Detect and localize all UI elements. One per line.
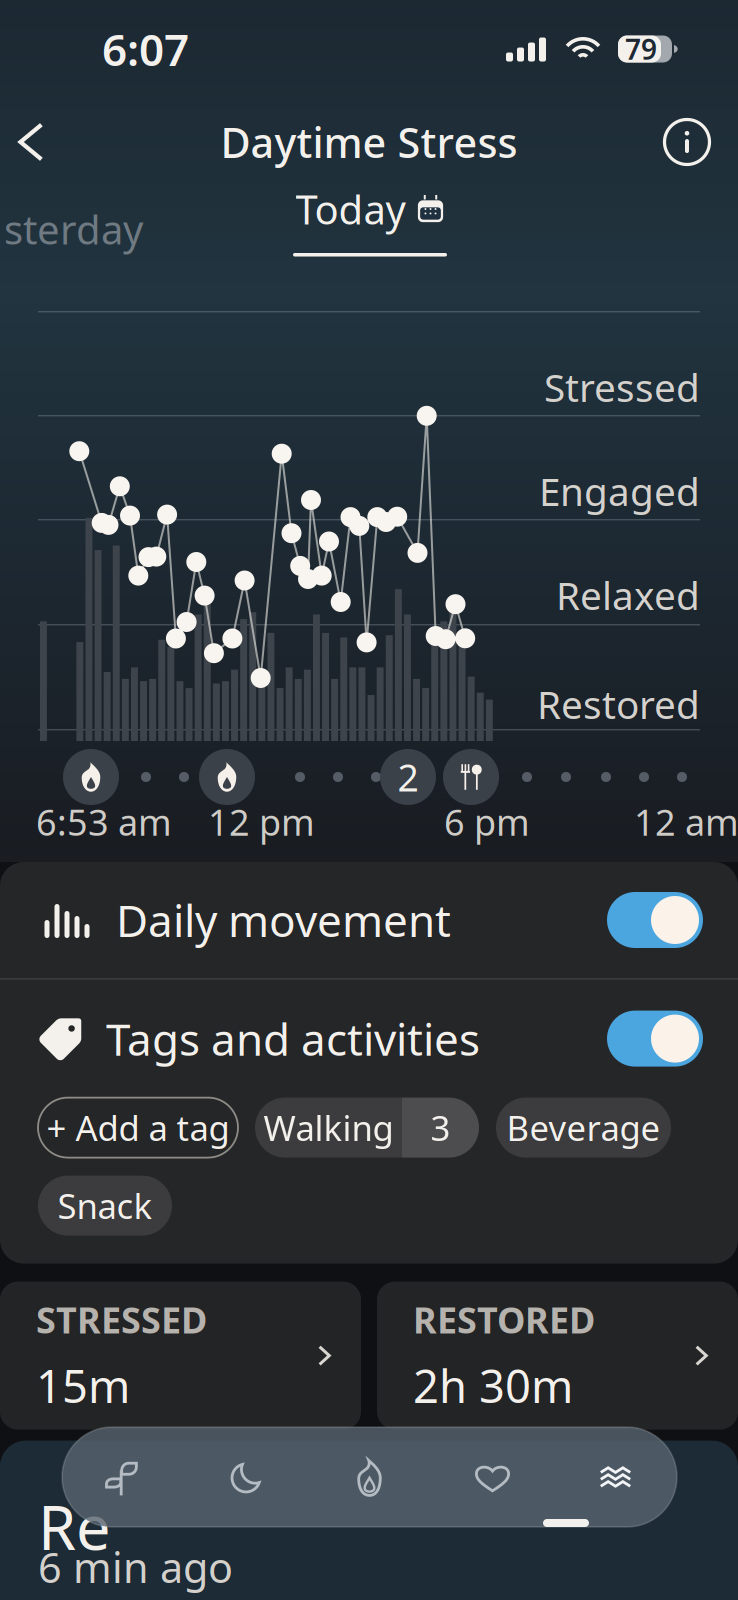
button[interactable]: Mindfulness: [62, 1427, 185, 1527]
staticText: STRESSED: [36, 1296, 207, 1343]
button[interactable]: RESTORED: [377, 1282, 738, 1430]
button[interactable]: Event marker: [61, 747, 121, 807]
button[interactable]: Tags and activities: [0, 980, 738, 1098]
staticText: 3: [430, 1105, 450, 1151]
staticText: 2h 30m: [413, 1355, 573, 1416]
staticText: Today: [295, 182, 405, 235]
staticText: 15m: [36, 1355, 130, 1416]
button[interactable]: Yesterday: [0, 186, 214, 272]
staticText: Restored: [537, 678, 700, 730]
staticText: 12 pm: [208, 798, 315, 846]
button[interactable]: Information: [650, 105, 724, 179]
button[interactable]: Beverage: [496, 1098, 671, 1158]
button[interactable]: Event marker: [197, 747, 257, 807]
staticText: sterday: [4, 202, 143, 255]
staticText: Engaged: [539, 465, 700, 517]
staticText: 6:53 am: [36, 798, 172, 846]
button[interactable]: Walking: [255, 1098, 479, 1158]
staticText: Daytime Stress: [220, 115, 517, 169]
button[interactable]: Event marker: [378, 747, 438, 807]
staticText: Snack: [57, 1183, 152, 1229]
button[interactable]: Event marker: [441, 747, 501, 807]
button[interactable]: Activity: [308, 1427, 431, 1527]
staticText: 12 am: [634, 798, 738, 846]
staticText: 6 min ago: [38, 1540, 233, 1594]
button[interactable]: Sleep: [185, 1427, 308, 1527]
button[interactable]: Re: [0, 1441, 738, 1600]
button[interactable]: Heart: [431, 1427, 554, 1527]
staticText: Stressed: [544, 361, 700, 413]
staticText: Relaxed: [556, 569, 700, 621]
staticText: 2: [397, 752, 418, 802]
staticText: 79: [625, 30, 657, 68]
button[interactable]: Snack: [38, 1176, 172, 1236]
button[interactable]: Daily movement: [0, 862, 738, 978]
staticText: Beverage: [506, 1105, 660, 1151]
button[interactable]: + Add a tag: [38, 1098, 238, 1158]
staticText: Tags and activities: [106, 1009, 480, 1068]
button[interactable]: Back: [0, 105, 69, 179]
button[interactable]: Today: [0, 186, 490, 272]
staticText: Re: [38, 1486, 111, 1567]
staticText: Walking: [263, 1105, 393, 1151]
staticText: 6 pm: [444, 798, 530, 846]
staticText: 6:07: [102, 20, 189, 78]
staticText: + Add a tag: [46, 1105, 229, 1151]
staticText: RESTORED: [413, 1296, 595, 1343]
staticText: Daily movement: [116, 891, 451, 949]
button[interactable]: STRESSED: [0, 1282, 361, 1430]
button[interactable]: Stress: [554, 1427, 677, 1527]
